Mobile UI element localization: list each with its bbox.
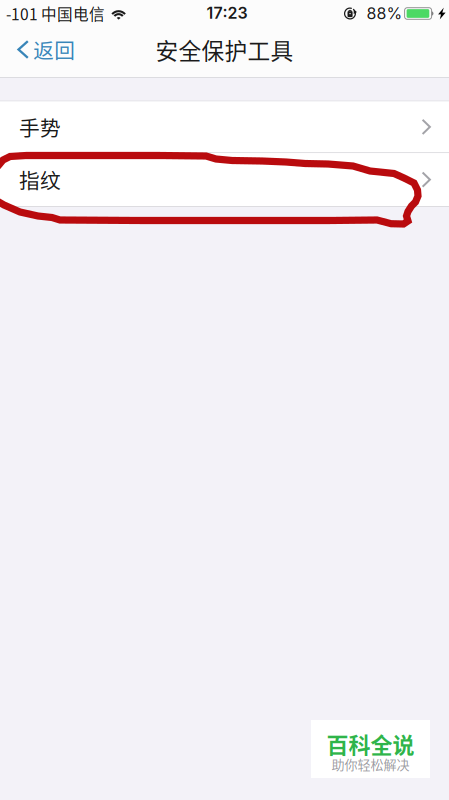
button[interactable]: 手势 (0, 101, 449, 152)
staticText: 返回 (33, 34, 75, 64)
staticText: 安全保护工具 (155, 33, 293, 66)
staticText: 百科全说 (326, 728, 414, 759)
staticText: 17:23 (206, 3, 247, 23)
staticText: 指纹 (19, 165, 61, 194)
staticText: 助你轻松解决 (331, 754, 409, 773)
staticText: 88% (367, 4, 403, 23)
staticText: 手势 (19, 112, 61, 142)
button[interactable]: 返回 (0, 28, 87, 77)
staticText: -101 中国电信 (6, 2, 105, 25)
button[interactable]: 指纹 (0, 153, 449, 206)
